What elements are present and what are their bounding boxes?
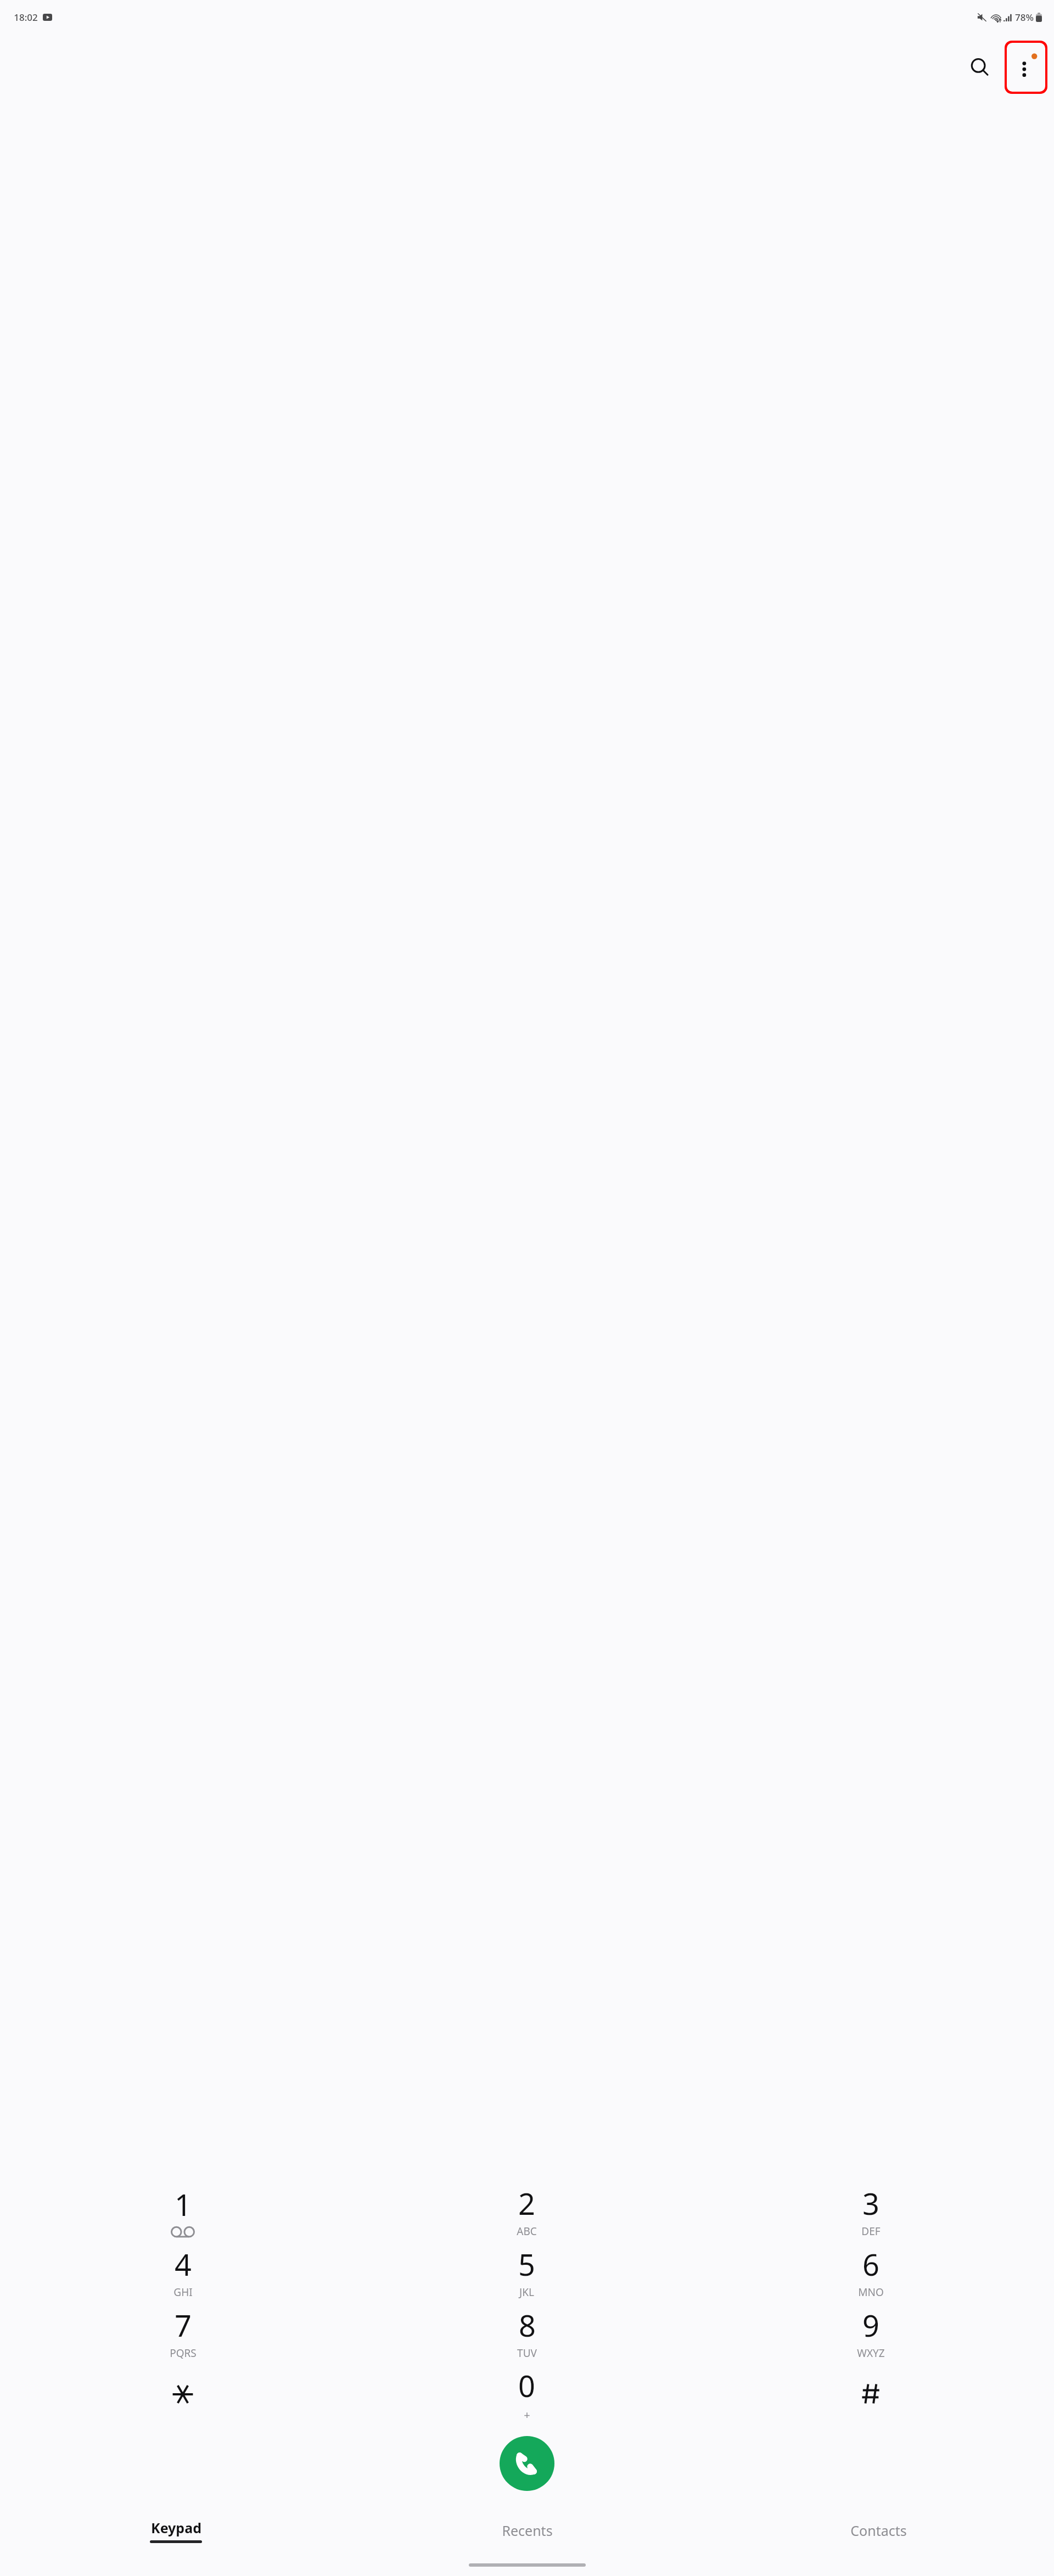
button[interactable]: 3 bbox=[699, 2180, 1043, 2241]
staticText: GHI bbox=[173, 2285, 193, 2299]
button[interactable]: 7 bbox=[11, 2302, 355, 2363]
staticText: 8 bbox=[519, 2305, 536, 2345]
staticText: Recents bbox=[502, 2521, 553, 2540]
staticText: 18:02 bbox=[14, 11, 38, 24]
button[interactable]: Search bbox=[962, 49, 998, 86]
staticText: WXYZ bbox=[857, 2346, 885, 2360]
staticText: JKL bbox=[519, 2285, 534, 2299]
button[interactable] bbox=[11, 2363, 355, 2424]
staticText: TUV bbox=[517, 2346, 537, 2360]
button[interactable] bbox=[699, 2363, 1043, 2424]
staticText: 3 bbox=[862, 2183, 879, 2224]
staticText: Contacts bbox=[850, 2521, 907, 2540]
staticText: ABC bbox=[517, 2224, 537, 2238]
staticText: 7 bbox=[175, 2305, 192, 2345]
staticText: 4 bbox=[175, 2244, 192, 2285]
button[interactable]: 5 bbox=[355, 2241, 699, 2302]
staticText: 6 bbox=[862, 2244, 879, 2285]
button[interactable]: 8 bbox=[355, 2302, 699, 2363]
staticText: PQRS bbox=[170, 2346, 197, 2360]
button[interactable]: More options bbox=[1005, 41, 1047, 94]
staticText: 1 bbox=[175, 2184, 192, 2225]
staticText: 9 bbox=[862, 2305, 879, 2345]
staticText: 0 bbox=[518, 2365, 535, 2406]
button[interactable]: 4 bbox=[11, 2241, 355, 2302]
staticText: 5 bbox=[518, 2244, 535, 2285]
staticText: 78% bbox=[1015, 11, 1034, 24]
button[interactable]: Contacts bbox=[703, 2512, 1054, 2549]
button[interactable]: 1 bbox=[11, 2180, 355, 2241]
button[interactable]: Keypad bbox=[0, 2512, 351, 2549]
staticText: 2 bbox=[518, 2183, 535, 2224]
button[interactable]: 9 bbox=[699, 2302, 1043, 2363]
button[interactable]: Recents bbox=[351, 2512, 703, 2549]
button[interactable]: 0 bbox=[355, 2363, 699, 2424]
staticText: DEF bbox=[861, 2224, 881, 2238]
button[interactable]: Call bbox=[500, 2436, 554, 2491]
staticText: MNO bbox=[858, 2285, 884, 2299]
staticText: Keypad bbox=[151, 2518, 201, 2537]
staticText: + bbox=[524, 2407, 530, 2422]
button[interactable]: 2 bbox=[355, 2180, 699, 2241]
button[interactable]: 6 bbox=[699, 2241, 1043, 2302]
